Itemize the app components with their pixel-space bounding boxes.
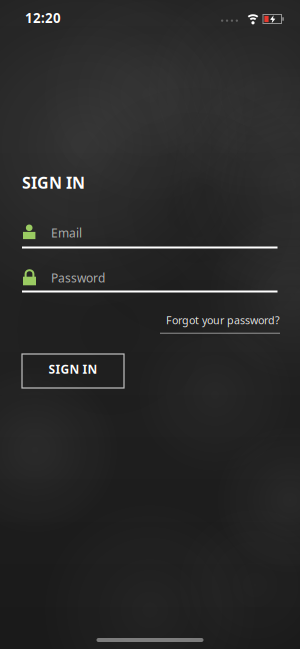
staticText: SIGN IN	[22, 172, 85, 193]
staticText: Password	[51, 270, 105, 286]
staticText: Email	[51, 225, 82, 241]
staticText: Forgot your password?	[166, 313, 280, 327]
staticText: 12:20	[25, 9, 61, 27]
staticText: SIGN IN	[48, 361, 97, 377]
button[interactable]: Email	[22, 224, 277, 248]
button[interactable]: Forgot your password?	[160, 313, 280, 334]
button[interactable]: SIGN IN	[22, 354, 124, 388]
button[interactable]: Password	[22, 267, 277, 292]
